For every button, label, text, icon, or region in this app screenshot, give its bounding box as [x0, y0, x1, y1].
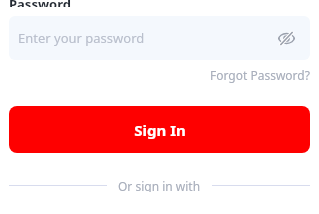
- staticText: Forgot Password?: [210, 67, 310, 83]
- staticText: Sign In: [134, 120, 186, 140]
- staticText: Password: [9, 0, 71, 7]
- button[interactable]: Forgot Password?: [201, 66, 319, 84]
- button[interactable]: Show password: [276, 28, 296, 48]
- staticText: Enter your password: [18, 29, 145, 47]
- button[interactable]: Sign In: [9, 106, 310, 153]
- button[interactable]: Enter your password: [9, 16, 310, 60]
- staticText: Or sign in with: [118, 178, 201, 192]
